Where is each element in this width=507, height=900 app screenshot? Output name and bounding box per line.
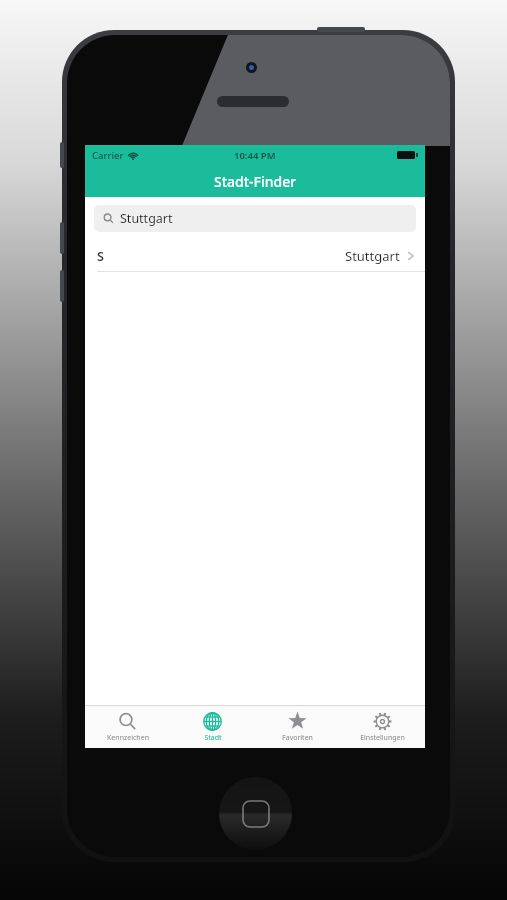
button[interactable]: S bbox=[85, 240, 425, 272]
staticText: Stadt bbox=[204, 733, 222, 743]
staticText: Stuttgart bbox=[345, 247, 400, 265]
staticText: Carrier bbox=[92, 149, 124, 162]
staticText: Stuttgart bbox=[120, 210, 173, 227]
button[interactable]: Stadt bbox=[170, 706, 255, 748]
button[interactable]: Stuttgart bbox=[94, 205, 416, 232]
staticText: Kennzeichen bbox=[107, 733, 149, 743]
staticText: 10:44 PM bbox=[234, 149, 276, 162]
button[interactable]: Kennzeichen bbox=[85, 706, 170, 748]
staticText: S bbox=[97, 248, 104, 265]
staticText: Einstellungen bbox=[360, 733, 405, 743]
button[interactable]: Favoriten bbox=[255, 706, 340, 748]
staticText: Stadt-Finder bbox=[214, 172, 297, 191]
button[interactable]: Einstellungen bbox=[340, 706, 425, 748]
staticText: Favoriten bbox=[282, 733, 313, 743]
